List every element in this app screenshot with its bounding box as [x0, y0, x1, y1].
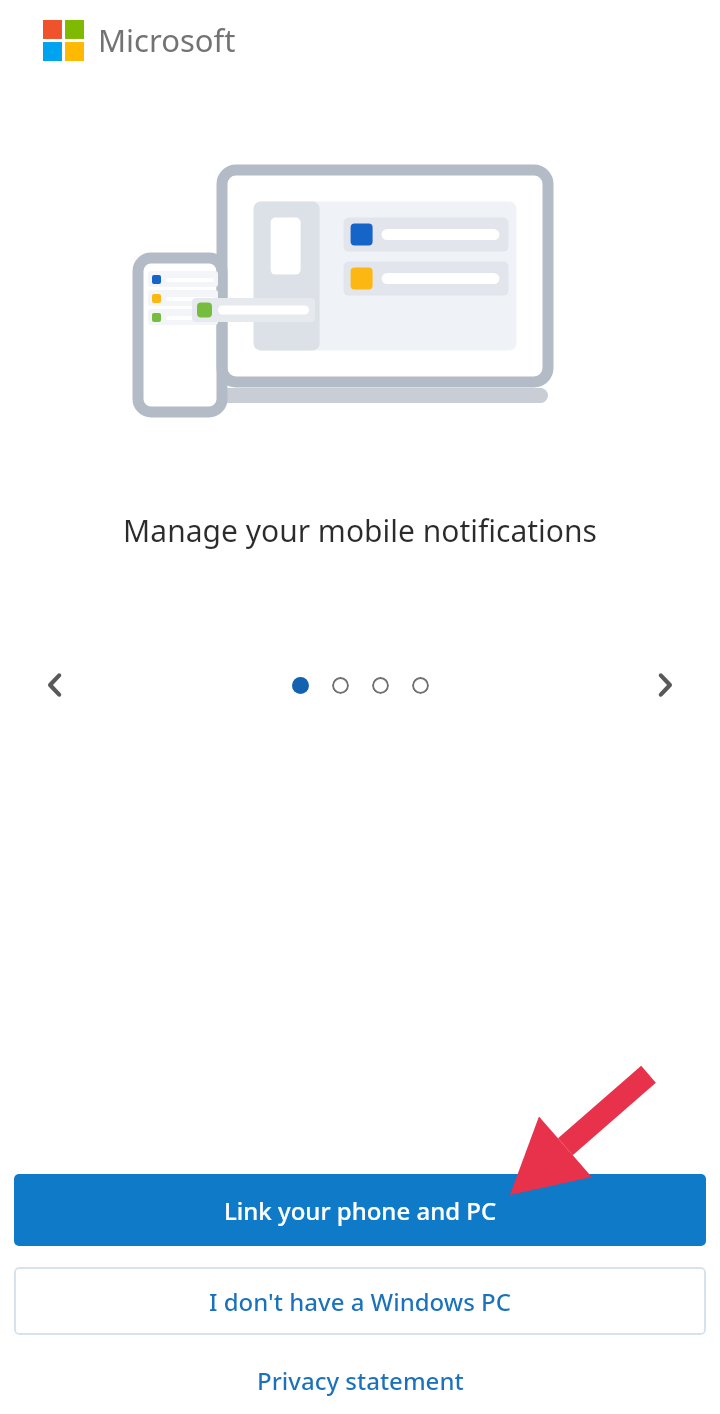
button[interactable]: Previous: [0, 659, 110, 711]
staticText: Link your phone and PC: [224, 1194, 497, 1227]
button[interactable]: Link your phone and PC: [14, 1174, 706, 1246]
staticText: Privacy statement: [257, 1364, 464, 1397]
button[interactable]: Privacy statement: [0, 1357, 720, 1403]
button[interactable]: Page 3: [360, 665, 400, 705]
staticText: Manage your mobile notifications: [28, 510, 692, 551]
button[interactable]: Page 4: [400, 665, 440, 705]
button[interactable]: Page 2: [320, 665, 360, 705]
button[interactable]: Page 1: [280, 665, 320, 705]
button[interactable]: Next: [610, 659, 720, 711]
staticText: Microsoft: [98, 19, 236, 61]
button[interactable]: I don't have a Windows PC: [14, 1267, 706, 1335]
staticText: I don't have a Windows PC: [209, 1285, 511, 1318]
